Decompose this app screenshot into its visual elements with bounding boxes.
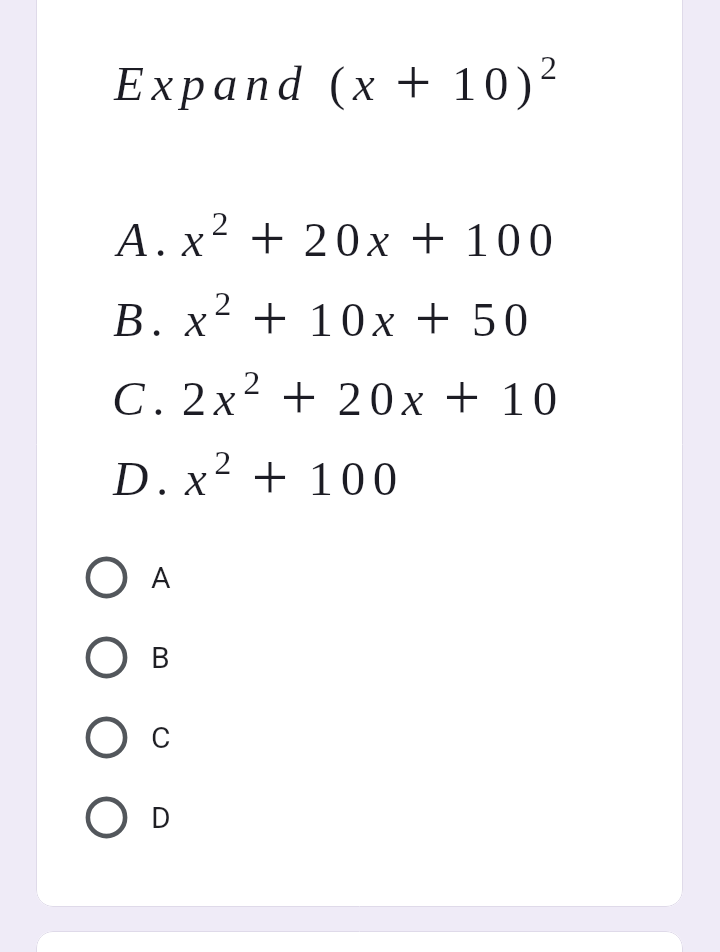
staticText: Expand (x + 10)2 (114, 46, 565, 118)
staticText: D. x2 + 100 (113, 441, 405, 513)
other: Choose option D (86, 797, 127, 838)
other: Choose option A (86, 557, 127, 598)
toggle[interactable]: Choose option B (60, 617, 620, 697)
staticText: A (151, 560, 171, 595)
staticText: C. 2x2 + 20x + 10 (112, 361, 565, 433)
staticText: B. x2 + 10x + 50 (113, 282, 536, 354)
toggle[interactable]: Choose option A (60, 537, 620, 617)
staticText: D (151, 800, 171, 835)
staticText: C (151, 720, 171, 755)
staticText: A. x2 + 20x + 100 (117, 202, 561, 274)
other: Choose option C (86, 717, 127, 758)
toggle[interactable]: Choose option D (60, 777, 620, 857)
toggle[interactable]: Choose option C (60, 697, 620, 777)
other: Choose option B (86, 637, 127, 678)
staticText: B (151, 640, 170, 675)
